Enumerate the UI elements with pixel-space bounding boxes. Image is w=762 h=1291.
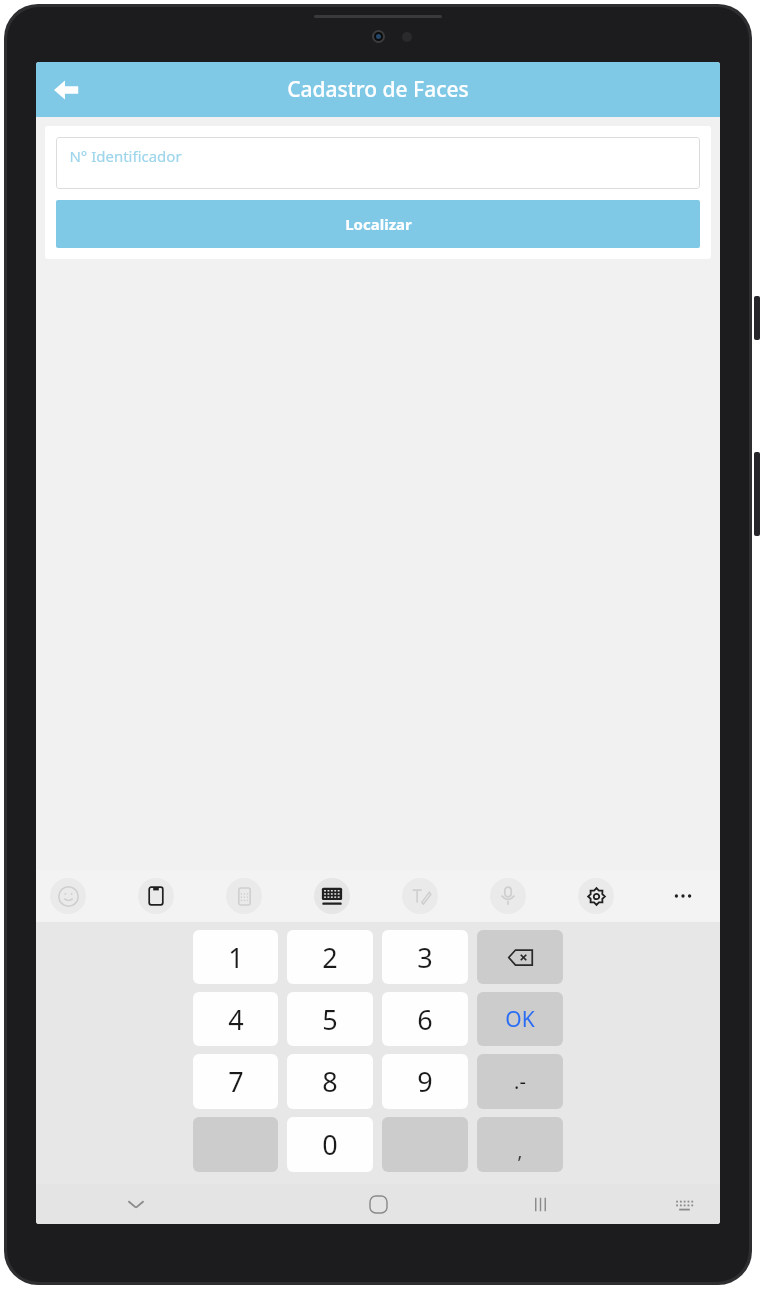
button[interactable]: 0	[287, 1117, 373, 1172]
staticText: ,	[517, 1137, 523, 1164]
button[interactable]: N° Identificador	[56, 137, 700, 189]
button[interactable]: Handwriting	[402, 878, 438, 914]
button[interactable]: 8	[287, 1054, 373, 1109]
button[interactable]: Localizar	[56, 200, 700, 248]
button[interactable]: 1	[193, 930, 278, 984]
staticText: 9	[417, 1063, 433, 1100]
button[interactable]: OK	[477, 992, 563, 1046]
staticText: 3	[417, 939, 433, 976]
button[interactable]: 4	[193, 992, 278, 1046]
staticText: Localizar	[345, 214, 412, 234]
button[interactable]: Back	[44, 68, 88, 112]
button[interactable]: 9	[382, 1054, 468, 1109]
button[interactable]: More options	[666, 879, 700, 913]
button[interactable]: Backspace	[477, 930, 563, 984]
button[interactable]: Recents	[520, 1184, 560, 1224]
staticText: 0	[322, 1126, 338, 1163]
staticText: 5	[322, 1001, 338, 1038]
staticText: .-	[514, 1068, 526, 1095]
button[interactable]: Voice input	[490, 878, 526, 914]
staticText: OK	[505, 1005, 535, 1034]
staticText: N° Identificador	[69, 146, 182, 166]
staticText: 2	[322, 939, 338, 976]
button[interactable]: Emoji	[50, 878, 86, 914]
button[interactable]: ,	[477, 1117, 563, 1172]
button[interactable]: Split keyboard	[226, 878, 262, 914]
staticText: 6	[417, 1001, 433, 1038]
button[interactable]: Keyboard mode	[314, 878, 350, 914]
button[interactable]: Hide keyboard	[116, 1184, 156, 1224]
button[interactable]: 7	[193, 1054, 278, 1109]
button[interactable]: Settings	[578, 878, 614, 914]
button[interactable]: .-	[477, 1054, 563, 1109]
button[interactable]: Clipboard	[138, 878, 174, 914]
staticText: 1	[228, 939, 244, 976]
staticText: 8	[322, 1063, 338, 1100]
staticText: 7	[228, 1063, 244, 1100]
button[interactable]: 5	[287, 992, 373, 1046]
button[interactable]: Keyboard	[666, 1186, 702, 1222]
button[interactable]: 6	[382, 992, 468, 1046]
staticText: Cadastro de Faces	[287, 75, 469, 104]
button[interactable]: Home	[358, 1184, 398, 1224]
button[interactable]: 2	[287, 930, 373, 984]
staticText: 4	[228, 1001, 244, 1038]
button[interactable]: 3	[382, 930, 468, 984]
